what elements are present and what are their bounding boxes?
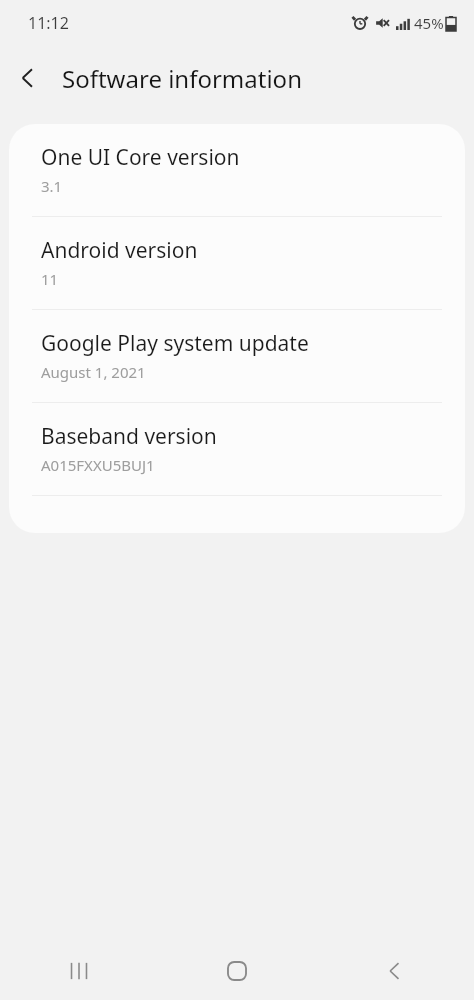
staticText: 3.1 bbox=[41, 176, 63, 196]
button[interactable]: Baseband version bbox=[9, 403, 465, 495]
button[interactable]: Back bbox=[0, 50, 56, 106]
staticText: 11 bbox=[41, 269, 59, 289]
button[interactable]: Recent apps bbox=[45, 942, 113, 1000]
staticText: A015FXXU5BUJ1 bbox=[41, 455, 155, 475]
button[interactable]: Back bbox=[361, 942, 429, 1000]
staticText: 45% bbox=[414, 13, 444, 33]
staticText: Software information bbox=[62, 62, 302, 95]
staticText: One UI Core version bbox=[41, 143, 240, 172]
button[interactable]: Google Play system update bbox=[9, 310, 465, 402]
staticText: Google Play system update bbox=[41, 329, 309, 358]
button[interactable]: One UI Core version bbox=[9, 124, 465, 216]
staticText: 11:12 bbox=[28, 12, 69, 34]
staticText: August 1, 2021 bbox=[41, 362, 146, 382]
staticText: Baseband version bbox=[41, 422, 217, 451]
button[interactable]: Home bbox=[203, 942, 271, 1000]
staticText: Android version bbox=[41, 236, 198, 265]
button[interactable]: Android version bbox=[9, 217, 465, 309]
